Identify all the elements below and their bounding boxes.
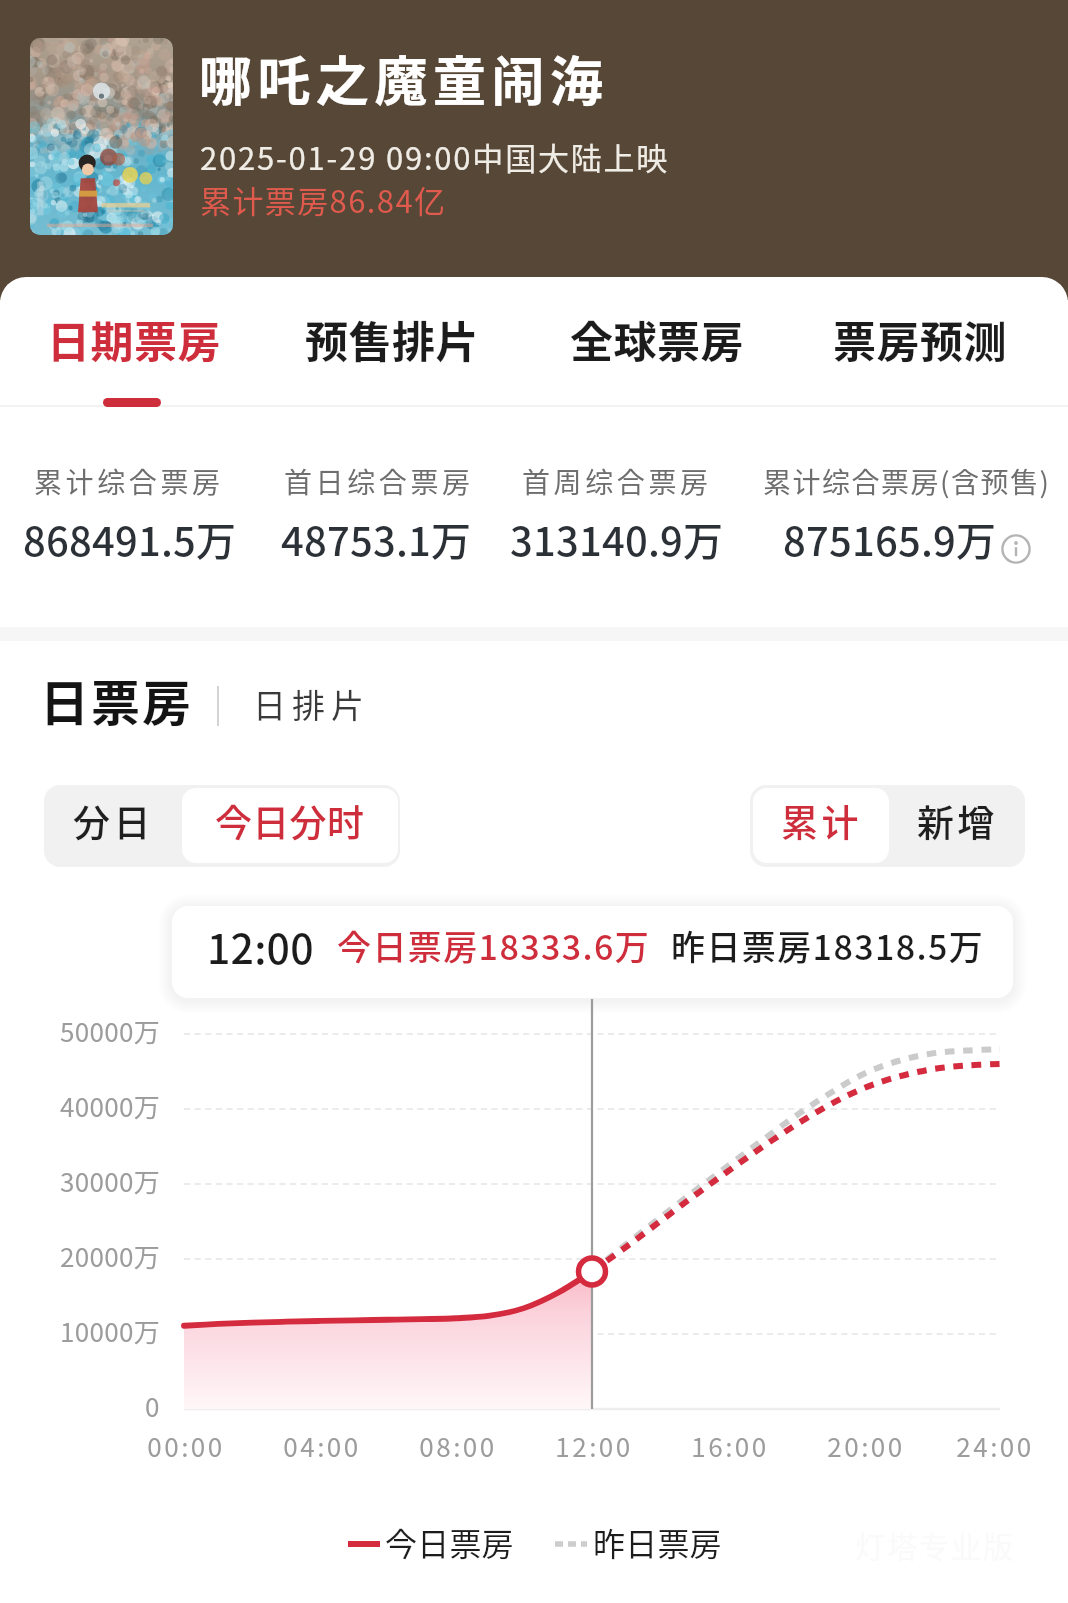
staticText: 累计综合票房(含预售) bbox=[763, 461, 1051, 502]
staticText: 累计 bbox=[781, 794, 862, 848]
button[interactable]: 今日分时 bbox=[182, 780, 398, 862]
button[interactable]: 累计 bbox=[753, 780, 889, 862]
staticText: 08:00 bbox=[419, 1427, 497, 1465]
staticText: 首日综合票房 bbox=[284, 461, 474, 502]
staticText: 预售排片 bbox=[305, 308, 479, 370]
staticText: 票房预测 bbox=[833, 308, 1007, 370]
staticText: 分日 bbox=[73, 794, 154, 848]
button[interactable]: 分日 bbox=[44, 780, 182, 862]
staticText: 00:00 bbox=[147, 1427, 225, 1465]
staticText: 今日票房18333.6万 bbox=[337, 921, 651, 970]
staticText: 0 bbox=[145, 1387, 160, 1425]
button[interactable]: 票房说明 bbox=[1001, 534, 1031, 564]
staticText: 24:00 bbox=[956, 1427, 1034, 1465]
staticText: 30000万 bbox=[60, 1162, 160, 1200]
staticText: 日排片 bbox=[250, 680, 367, 728]
staticText: 04:00 bbox=[283, 1427, 361, 1465]
button[interactable]: 票房预测 bbox=[805, 299, 1035, 379]
staticText: 48753.1万 bbox=[281, 510, 472, 568]
staticText: 今日票房 bbox=[385, 1519, 514, 1565]
staticText: 875165.9万 bbox=[783, 510, 997, 568]
staticText: 哪吒之魔童闹海 bbox=[199, 40, 609, 117]
staticText: 12:00 bbox=[207, 916, 314, 975]
staticText: 新增 bbox=[917, 794, 998, 848]
staticText: 40000万 bbox=[60, 1087, 160, 1125]
staticText: 10000万 bbox=[60, 1312, 160, 1350]
button[interactable]: 日期票房 bbox=[19, 299, 249, 379]
staticText: 昨日票房 bbox=[593, 1519, 722, 1565]
button[interactable]: 昨日票房 bbox=[593, 1519, 722, 1565]
button[interactable]: 今日票房 bbox=[385, 1519, 514, 1565]
staticText: 日期票房 bbox=[47, 308, 221, 370]
button[interactable]: 全球票房 bbox=[542, 299, 772, 379]
staticText: 日票房 bbox=[40, 664, 194, 735]
staticText: 累计票房86.84亿 bbox=[200, 177, 447, 222]
staticText: 20:00 bbox=[827, 1427, 905, 1465]
button[interactable]: 预售排片 bbox=[277, 299, 507, 379]
staticText: 昨日票房18318.5万 bbox=[671, 921, 985, 970]
staticText: 首周综合票房 bbox=[522, 461, 712, 502]
staticText: 全球票房 bbox=[570, 308, 744, 370]
staticText: 868491.5万 bbox=[23, 510, 237, 568]
staticText: 累计综合票房 bbox=[34, 461, 224, 502]
staticText: 50000万 bbox=[60, 1012, 160, 1050]
button[interactable]: 新增 bbox=[889, 780, 1025, 862]
staticText: 313140.9万 bbox=[510, 510, 724, 568]
staticText: 20000万 bbox=[60, 1237, 160, 1275]
staticText: 12:00 bbox=[555, 1427, 633, 1465]
staticText: 16:00 bbox=[691, 1427, 769, 1465]
staticText: 2025-01-29 09:00中国大陆上映 bbox=[200, 134, 670, 179]
staticText: 今日分时 bbox=[215, 794, 365, 848]
button[interactable]: 日排片 bbox=[250, 680, 367, 728]
